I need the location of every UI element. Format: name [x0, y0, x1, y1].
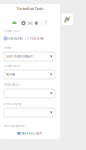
- staticText: Thread Tools: [4, 29, 20, 32]
- button[interactable]: [4, 108, 55, 117]
- button[interactable]: Help: [43, 20, 48, 26]
- staticText: ?: [44, 20, 46, 26]
- button[interactable]: Live Update: [4, 37, 22, 40]
- staticText: Theme: [4, 46, 11, 49]
- button[interactable]: Wide Run Stuff: [17, 132, 42, 135]
- button[interactable]: Extensions: [61, 13, 73, 25]
- button[interactable]: [4, 89, 55, 98]
- staticText: Monday Scanners: [4, 124, 25, 127]
- staticText: ARIA Display: [4, 102, 21, 105]
- button[interactable]: Alerts: [34, 20, 39, 26]
- staticText: Light Theme (Default): [6, 55, 33, 58]
- staticText: Post Jump: [30, 37, 44, 40]
- staticText: ARIA Mode: [4, 83, 19, 86]
- button[interactable]: Light Theme (Default): [4, 52, 55, 61]
- button[interactable]: Shuffle: [28, 20, 33, 26]
- staticText: Normal: [6, 73, 15, 76]
- button[interactable]: Normal: [4, 70, 55, 79]
- staticText: Wide Run Stuff: [22, 132, 42, 135]
- button[interactable]: Post Jump: [25, 37, 44, 40]
- staticText: TurboHub Tools: [16, 6, 43, 11]
- button[interactable]: Settings: [21, 20, 26, 26]
- staticText: Thread Mode: [4, 64, 20, 67]
- button[interactable]: Sprout: [12, 20, 17, 26]
- staticText: Live Update: [8, 37, 22, 40]
